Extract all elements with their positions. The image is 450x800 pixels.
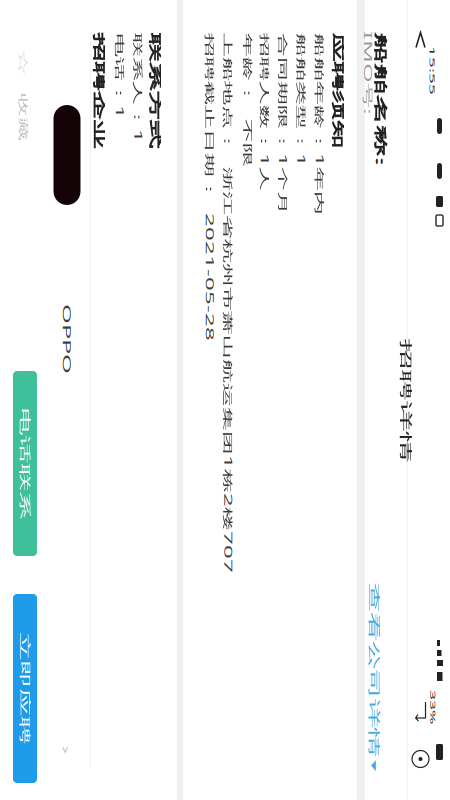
staticText: 年龄： 不限	[33, 188, 167, 217]
staticText: 联系人：1	[33, 296, 143, 328]
staticText: 电话：1	[33, 314, 119, 346]
staticText: IMO号:	[31, 65, 115, 99]
staticText: 招聘截止日期： 2021-05-28	[33, 224, 341, 256]
staticText: 船舶年龄：1年内	[33, 114, 215, 146]
button[interactable]: 电话联系	[371, 413, 450, 437]
staticText: 船舶名称:	[33, 49, 166, 90]
staticText: 上船地点： 浙江省杭州市萧山航运集团1栋2楼707	[33, 206, 450, 238]
staticText: 招聘详情	[339, 25, 450, 63]
staticText: 应聘须知	[33, 94, 149, 130]
staticText: 招聘人数：1人	[33, 169, 191, 201]
staticText: 招聘企业	[33, 333, 149, 369]
staticText: 船舶类型：1	[33, 133, 167, 165]
staticText: OPPO	[304, 366, 374, 400]
staticText: 联系方式	[33, 277, 149, 313]
button[interactable]: OPPO	[0, 359, 450, 407]
staticText: 电话联系	[407, 408, 450, 442]
staticText: 合同期限：1个月	[33, 151, 215, 183]
